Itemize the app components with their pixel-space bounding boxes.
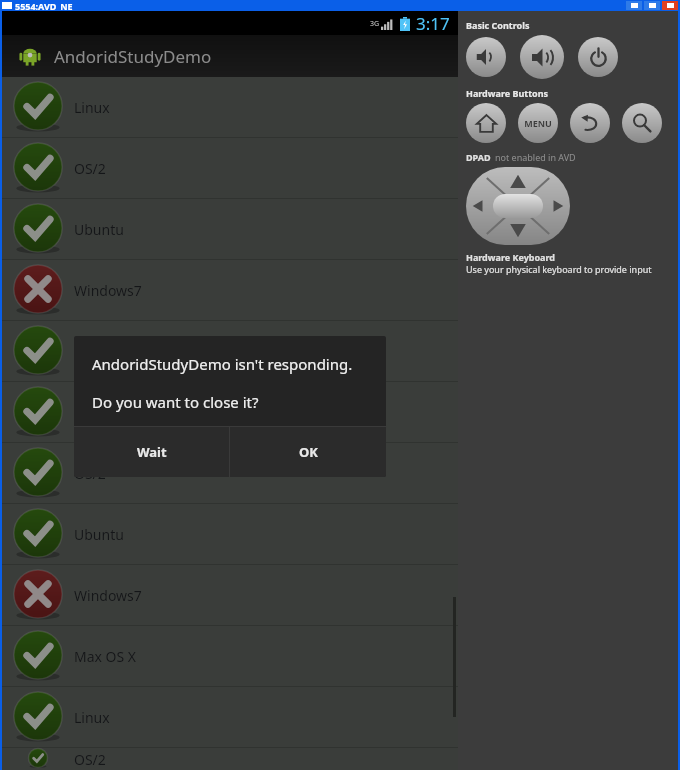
button[interactable]: Power [578, 37, 618, 77]
staticText: Hardware Buttons [466, 87, 549, 99]
button[interactable]: OK [230, 427, 386, 477]
button[interactable]: Linux [2, 687, 458, 748]
staticText: Linux [74, 98, 110, 117]
staticText: Basic Controls [466, 19, 530, 31]
staticText: Windows7 [74, 586, 142, 605]
staticText: Linux [74, 403, 110, 422]
button[interactable]: Max OS X [2, 321, 458, 382]
button[interactable]: Window button [662, 1, 678, 10]
button[interactable]: OS/2 [2, 443, 458, 504]
staticText: Windows7 [74, 281, 142, 300]
button[interactable]: Home [466, 103, 506, 143]
staticText: Linux [74, 708, 110, 727]
staticText: MENU [524, 117, 552, 129]
button[interactable]: OS/2 [2, 138, 458, 199]
staticText: 3G [370, 19, 380, 29]
staticText: OS/2 [74, 750, 106, 769]
button[interactable]: Linux [2, 77, 458, 138]
button[interactable]: Window button [626, 1, 642, 10]
button[interactable]: Windows7 [2, 565, 458, 626]
staticText: OS/2 [74, 159, 106, 178]
staticText: Do you want to close it? [92, 392, 259, 412]
staticText: not enabled in AVD [495, 151, 576, 163]
staticText: Wait [137, 443, 167, 461]
staticText: OK [299, 443, 318, 461]
staticText: AndoridStudyDemo isn't responding. [92, 354, 353, 374]
staticText: DPAD [466, 151, 491, 163]
staticText: AndoridStudyDemo [54, 45, 212, 68]
button[interactable]: OS/2 [2, 748, 458, 770]
staticText: 3:17 [416, 12, 450, 35]
staticText: Max OS X [74, 342, 137, 361]
button[interactable]: Select [493, 194, 543, 218]
button[interactable]: Max OS X [2, 626, 458, 687]
button[interactable]: Linux [2, 382, 458, 443]
button[interactable]: Ubuntu [2, 504, 458, 565]
button[interactable]: Ubuntu [2, 199, 458, 260]
button[interactable]: Volume down [466, 37, 506, 77]
button[interactable]: Search [622, 103, 662, 143]
button[interactable]: Menu [518, 103, 558, 143]
button[interactable]: Window button [644, 1, 660, 10]
button[interactable]: DPAD [466, 167, 570, 245]
staticText: Ubuntu [74, 525, 124, 544]
button[interactable]: Volume up [520, 35, 564, 79]
staticText: Ubuntu [74, 220, 124, 239]
staticText: Max OS X [74, 647, 137, 666]
staticText: Use your physical keyboard to provide in… [466, 263, 652, 275]
staticText: 5554:AVD_NE [15, 0, 73, 11]
button[interactable]: Wait [74, 427, 229, 477]
button[interactable]: Windows7 [2, 260, 458, 321]
staticText: OS/2 [74, 464, 106, 483]
button[interactable]: Back [570, 103, 610, 143]
staticText: Hardware Keyboard [466, 251, 556, 263]
